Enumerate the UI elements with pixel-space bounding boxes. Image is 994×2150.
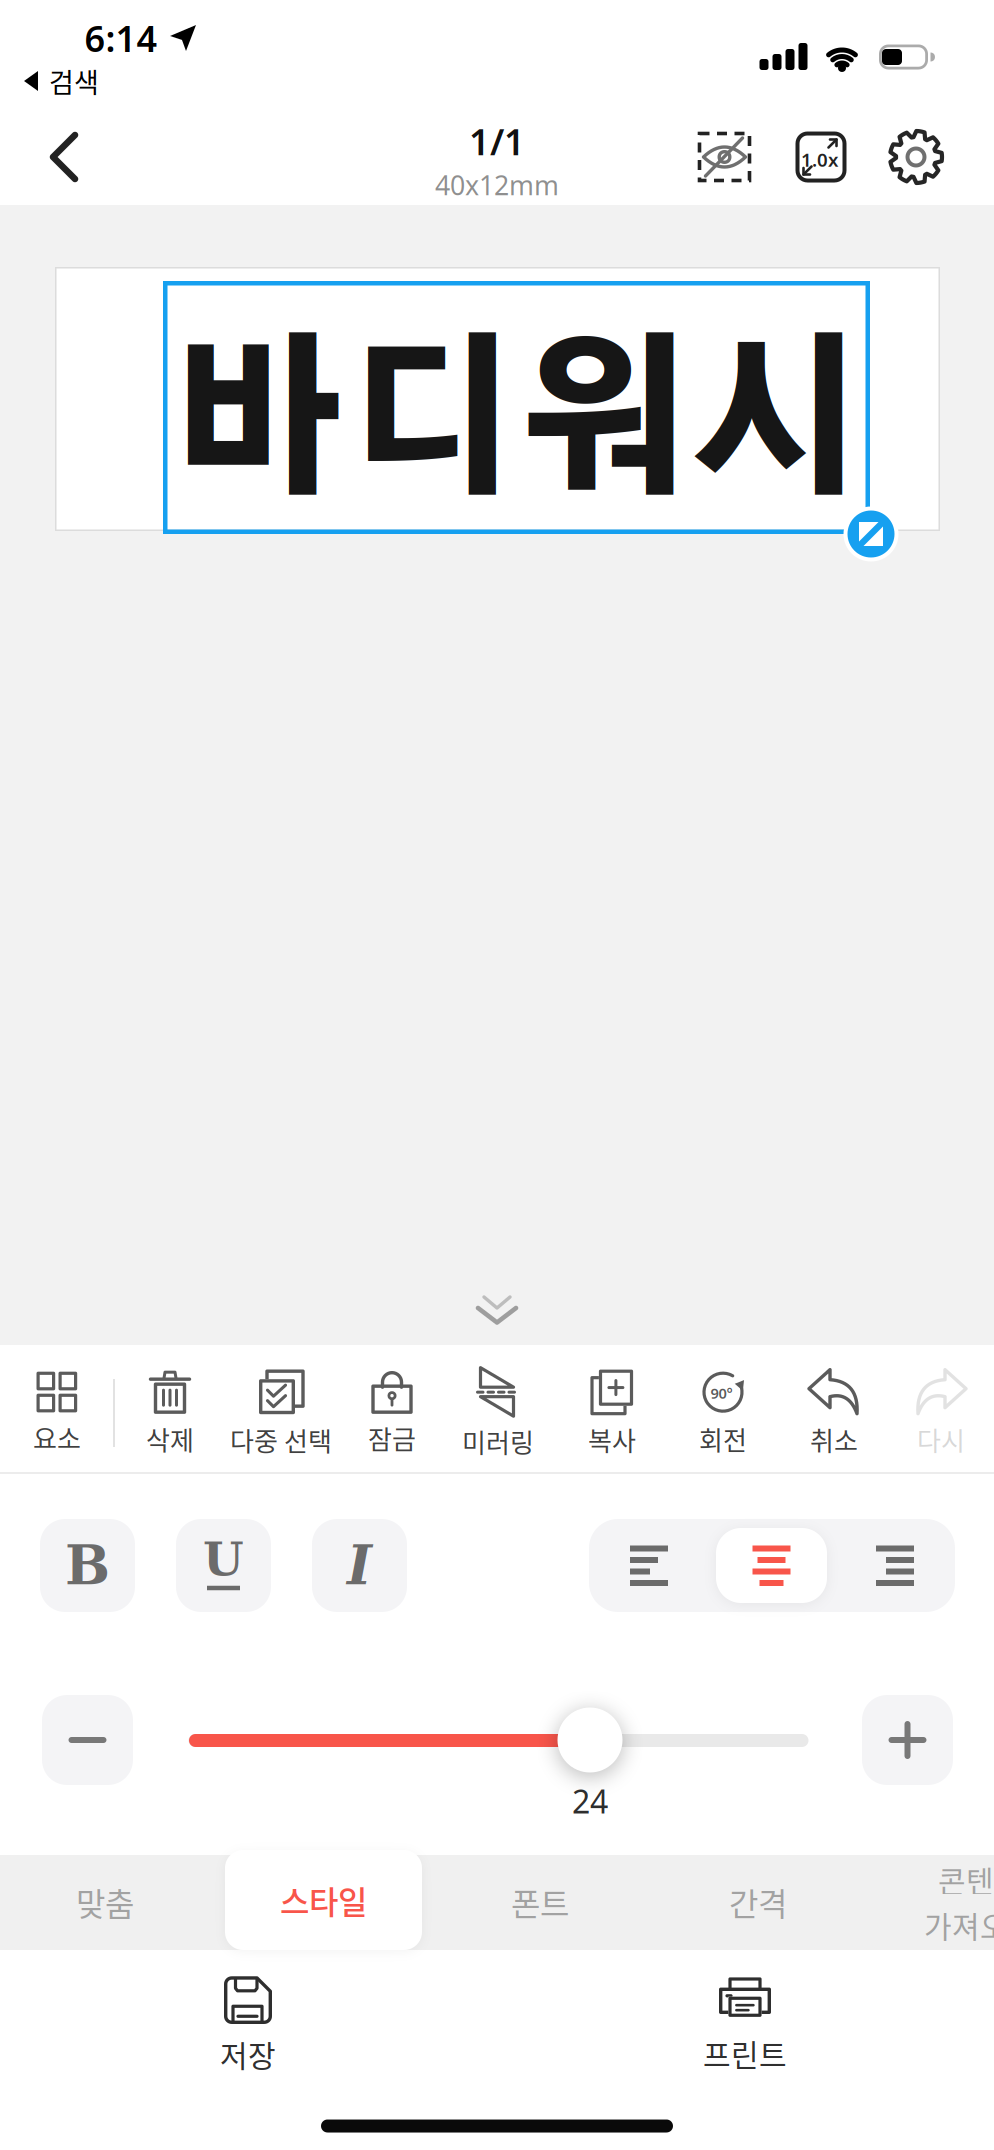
staticText: 미러링 <box>462 1423 534 1460</box>
staticText: 맞춤 <box>76 1879 134 1925</box>
staticText: 다시 <box>917 1421 965 1458</box>
button[interactable]: 저장 <box>220 1976 276 2076</box>
staticText: I <box>347 1534 372 1597</box>
button[interactable]: 간격 <box>688 1854 828 1949</box>
button[interactable]: 미러링 <box>462 1368 534 1460</box>
staticText: 간격 <box>729 1879 787 1925</box>
button[interactable]: 오른쪽 정렬 <box>855 1525 935 1605</box>
button[interactable]: 잠금 <box>368 1371 416 1457</box>
staticText: 40x12mm <box>435 167 559 203</box>
button[interactable]: Zoom 1.0x <box>795 131 846 182</box>
button[interactable]: 크기 조절 핸들 <box>843 506 899 562</box>
staticText: B <box>65 1534 110 1597</box>
staticText: 1/1 <box>469 117 525 165</box>
button[interactable]: 왼쪽 정렬 <box>609 1525 689 1605</box>
staticText: 스타일 <box>280 1877 367 1923</box>
button[interactable]: 패널 접기 <box>467 1291 527 1337</box>
button[interactable]: 스타일 <box>225 1850 422 1950</box>
staticText: 1.0x <box>801 147 838 172</box>
button[interactable]: 요소 <box>33 1372 81 1456</box>
button[interactable]: 다중 선택 <box>230 1369 332 1459</box>
staticText: 회전 <box>699 1420 747 1458</box>
button[interactable]: 취소 <box>809 1370 859 1458</box>
button[interactable]: 맞춤 <box>35 1854 175 1949</box>
staticText: 폰트 <box>511 1879 569 1925</box>
button[interactable]: 크게 <box>862 1695 953 1785</box>
staticText: 가져오기 <box>924 1903 994 1946</box>
button[interactable]: 작게 <box>42 1695 133 1785</box>
button[interactable]: 다시 <box>916 1370 966 1458</box>
button[interactable]: 폰트 <box>470 1854 610 1949</box>
staticText: 다중 선택 <box>230 1421 332 1459</box>
button[interactable]: Hide <box>697 131 751 182</box>
staticText: 삭제 <box>146 1420 194 1458</box>
button[interactable]: Settings <box>888 129 943 184</box>
staticText: 바디워시 <box>172 344 864 514</box>
button[interactable]: 가운데 정렬 <box>716 1528 827 1603</box>
button[interactable]: Back <box>48 130 102 184</box>
staticText: 90° <box>710 1383 732 1403</box>
staticText: 프린트 <box>703 2031 787 2075</box>
button[interactable]: I <box>312 1519 407 1612</box>
button[interactable]: 콘텐츠 <box>900 1854 994 1949</box>
staticText: 24 <box>572 1780 608 1822</box>
button[interactable]: B <box>40 1519 135 1612</box>
button[interactable]: 삭제 <box>146 1370 194 1458</box>
staticText: 잠금 <box>368 1419 416 1457</box>
staticText: U <box>203 1532 244 1586</box>
button[interactable]: 프린트 <box>703 1977 787 2075</box>
staticText: 취소 <box>810 1421 858 1458</box>
button[interactable]: U <box>176 1519 271 1612</box>
staticText: 요소 <box>33 1419 81 1456</box>
staticText: 복사 <box>588 1421 636 1458</box>
staticText: 콘텐츠 <box>938 1858 994 1901</box>
staticText: 저장 <box>220 2032 276 2076</box>
button[interactable]: 90° <box>699 1370 747 1458</box>
button[interactable]: 크기 조절 <box>557 1707 622 1772</box>
staticText: 검색 <box>49 61 99 101</box>
staticText: 6:14 <box>84 14 157 62</box>
button[interactable]: 복사 <box>588 1370 636 1458</box>
